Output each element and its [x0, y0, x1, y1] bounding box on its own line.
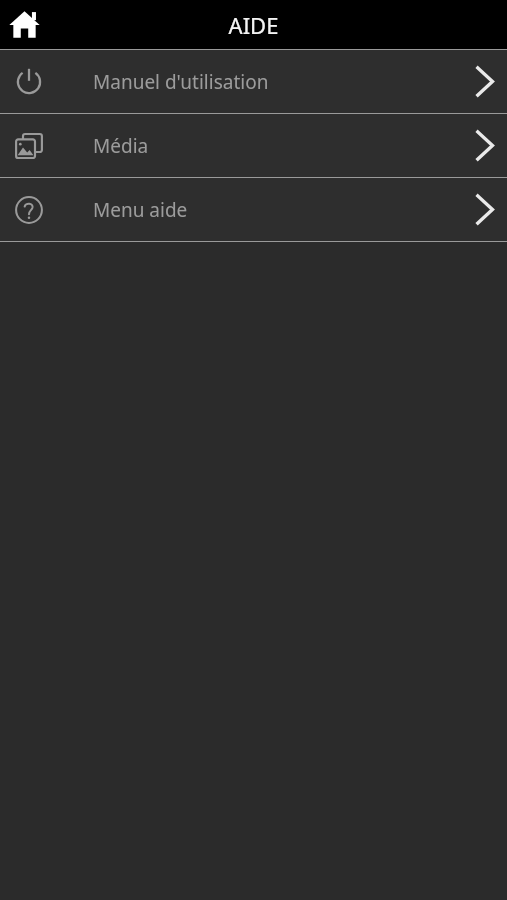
staticText: Menu aide	[93, 197, 461, 223]
staticText: Média	[93, 133, 461, 159]
button[interactable]: Accueil	[0, 0, 48, 49]
button[interactable]: Média	[0, 114, 507, 177]
staticText: Manuel d'utilisation	[93, 69, 461, 95]
button[interactable]: Manuel d'utilisation	[0, 50, 507, 113]
staticText: AIDE	[0, 10, 507, 40]
button[interactable]: Menu aide	[0, 178, 507, 241]
